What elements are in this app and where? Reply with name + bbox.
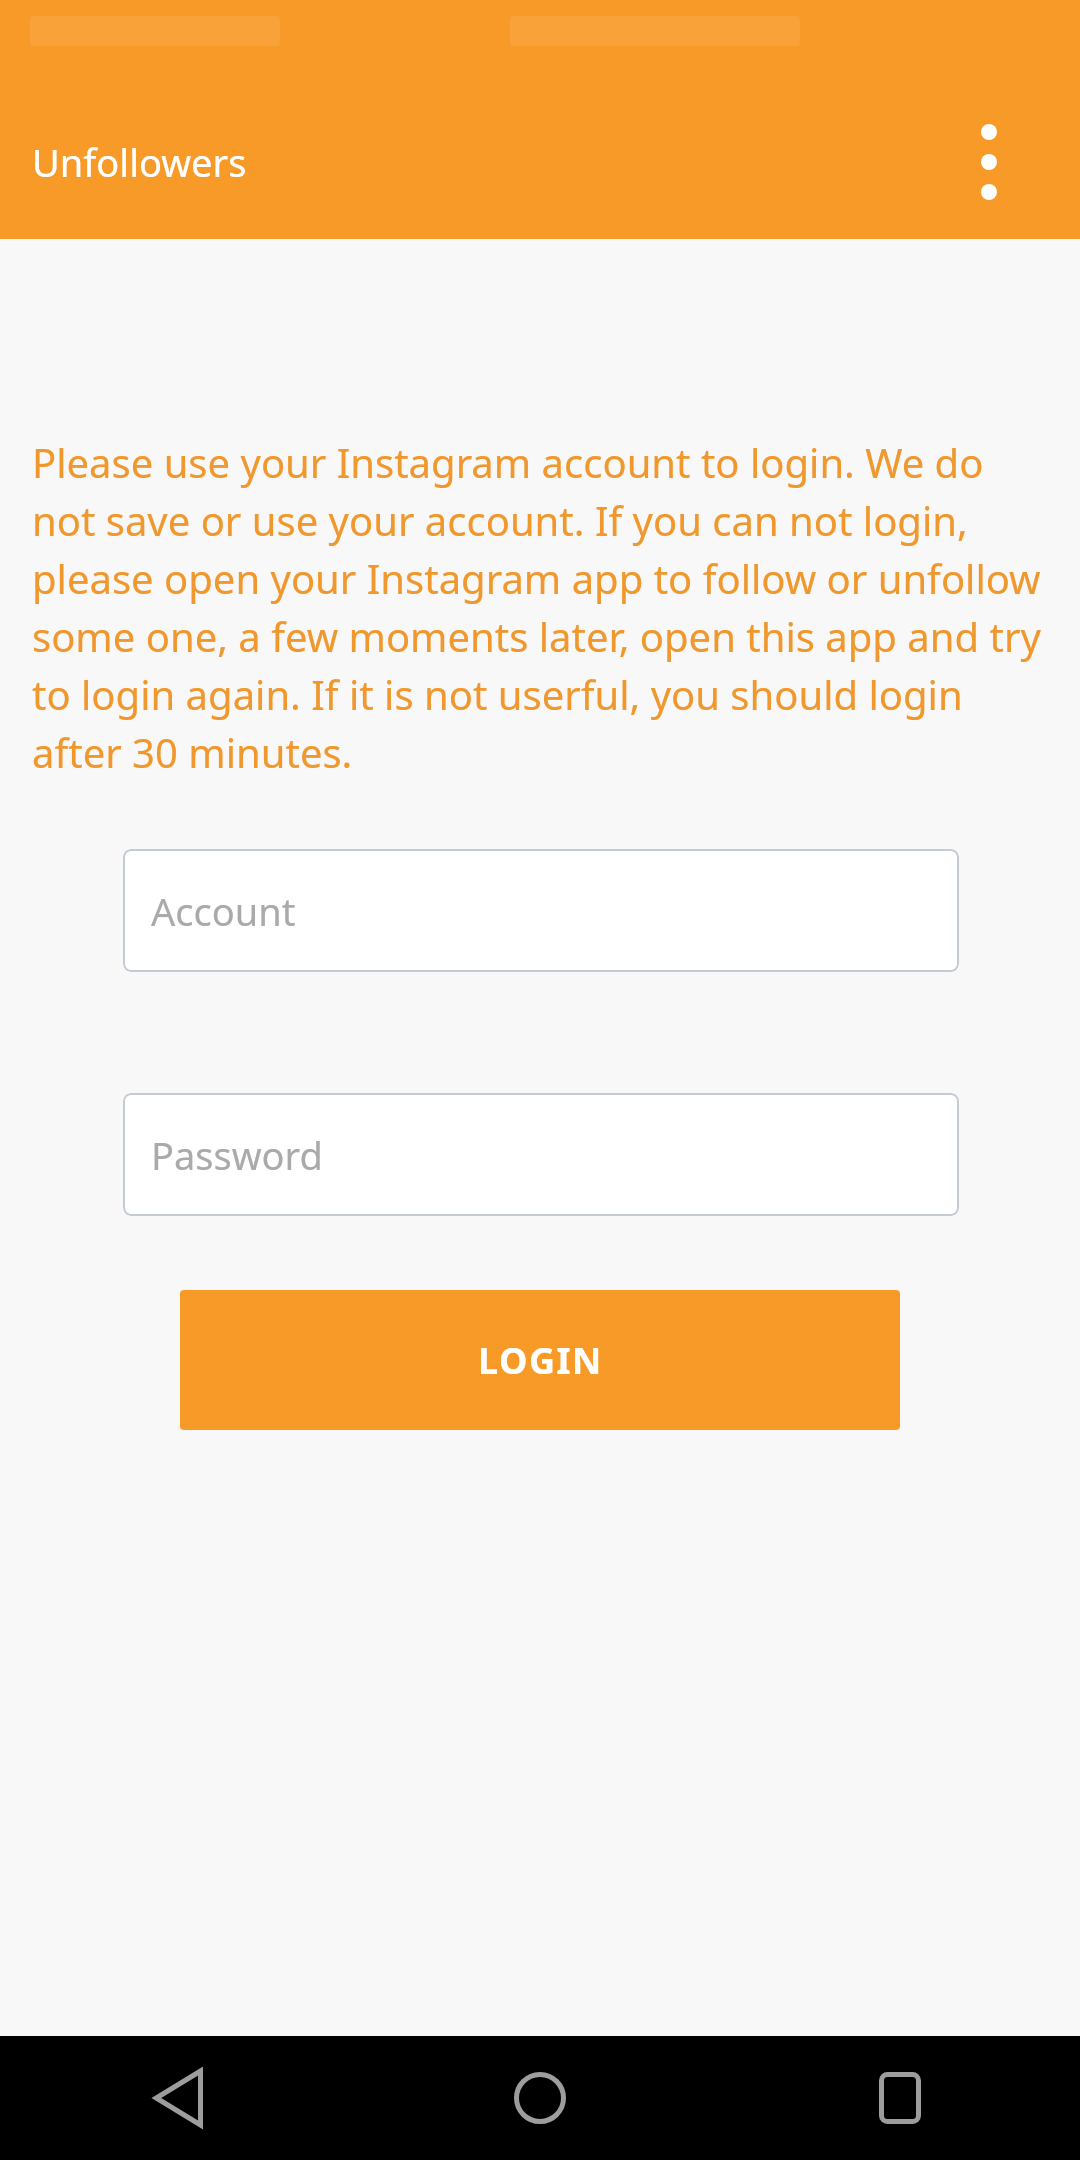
staticText: LOGIN — [478, 1336, 603, 1385]
button[interactable]: Password — [123, 1093, 959, 1216]
staticText: Account — [151, 885, 296, 937]
button[interactable]: More options — [917, 90, 1061, 234]
button[interactable]: LOGIN — [180, 1290, 900, 1430]
button[interactable]: Recent apps — [720, 2036, 1080, 2160]
button[interactable]: Back — [0, 2036, 360, 2160]
staticText: Unfollowers — [32, 136, 247, 188]
staticText: Please use your Instagram account to log… — [32, 435, 1046, 779]
staticText: Password — [151, 1129, 323, 1181]
button[interactable]: Account — [123, 849, 959, 972]
button[interactable]: Home — [360, 2036, 720, 2160]
